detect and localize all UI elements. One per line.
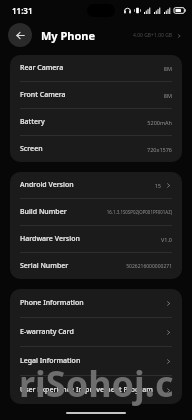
staticText: 4.00 GB+1.00 GB	[133, 32, 173, 39]
staticText: My Phone	[41, 28, 96, 43]
staticText: E-warranty Card	[20, 327, 74, 337]
staticText: Legal Information	[20, 356, 81, 366]
staticText: Build Number	[20, 207, 67, 217]
button[interactable]: E-warranty Card	[10, 318, 182, 346]
button[interactable]: Rear Camera	[10, 55, 182, 81]
button[interactable]: Build Number	[10, 199, 182, 225]
staticText: Rear Camera	[20, 63, 64, 73]
staticText: Serial Number	[20, 261, 69, 271]
button[interactable]: User Experience Improvement Program	[10, 376, 182, 404]
staticText: 5026216000000271	[126, 263, 172, 270]
staticText: 11:31	[12, 5, 33, 16]
button[interactable]: 4.00 GB+1.00 GB	[131, 28, 184, 43]
button[interactable]: Phone Information	[10, 289, 182, 317]
staticText: 8M	[163, 65, 172, 72]
staticText: 15	[154, 182, 161, 189]
button[interactable]: Back	[8, 23, 32, 47]
staticText: 5200mAh	[147, 119, 172, 126]
staticText: Hardware Version	[20, 234, 80, 244]
staticText: Screen	[20, 144, 43, 154]
staticText: Android Version	[20, 180, 74, 190]
button[interactable]: Android Version	[10, 172, 182, 198]
staticText: 8M	[163, 92, 172, 99]
button[interactable]: Battery	[10, 109, 182, 135]
staticText: User Experience Improvement Program	[20, 385, 153, 395]
button[interactable]: Front Camera	[10, 82, 182, 108]
staticText: Front Camera	[20, 90, 66, 100]
staticText: 16.1.3.1S0SP02(OP001PF001AZ)	[106, 209, 172, 215]
button[interactable]: Legal Information	[10, 347, 182, 375]
button[interactable]: Screen	[10, 136, 182, 162]
staticText: V1.0	[160, 236, 172, 243]
staticText: 720x1576	[147, 146, 172, 153]
button[interactable]: Hardware Version	[10, 226, 182, 252]
staticText: Battery	[20, 117, 45, 127]
button[interactable]: Serial Number	[10, 253, 182, 279]
staticText: riSohoj.c	[19, 359, 174, 408]
staticText: Phone Information	[20, 298, 84, 308]
